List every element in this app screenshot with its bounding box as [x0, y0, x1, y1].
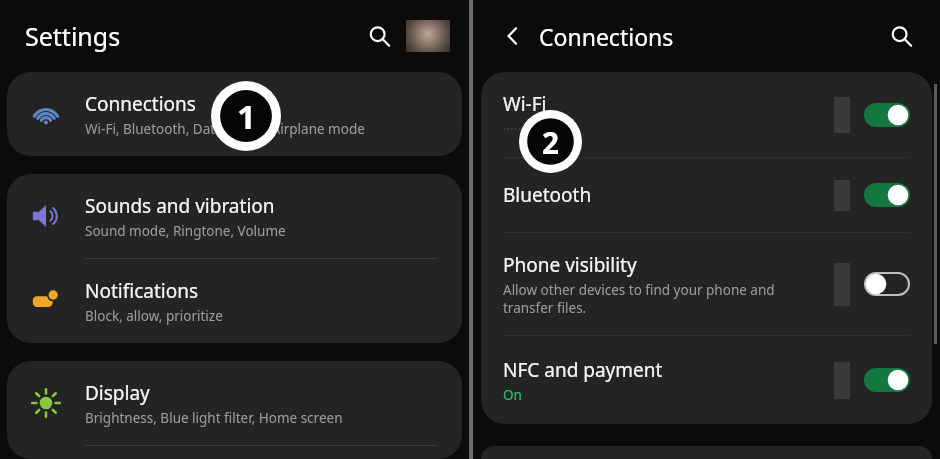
staticText: Connections — [539, 21, 674, 52]
staticText: Brightness, Blue light filter, Home scre… — [85, 409, 343, 427]
staticText: Sound mode, Ringtone, Volume — [85, 222, 286, 240]
button[interactable]: Back — [497, 20, 529, 52]
staticText: Display — [85, 380, 150, 406]
button[interactable]: Bluetooth — [864, 183, 910, 207]
staticText: Phone visibility — [503, 252, 637, 278]
button[interactable]: Display — [7, 361, 462, 445]
staticText: Wi-Fi, Bluetooth, Data usage, Airplane m… — [85, 120, 365, 138]
button[interactable]: Bluetooth — [481, 158, 932, 232]
button[interactable]: Wi-Fi — [481, 72, 932, 157]
button[interactable]: Connections — [7, 72, 462, 156]
button[interactable]: Sounds and vibration — [7, 174, 462, 258]
staticText: Sounds and vibration — [85, 193, 275, 219]
button[interactable]: NFC and payment — [864, 368, 910, 392]
staticText: Bluetooth — [503, 182, 592, 208]
staticText: ······· — [503, 120, 529, 138]
staticText: NFC and payment — [503, 357, 663, 383]
staticText: Notifications — [85, 278, 199, 304]
staticText: 2 — [542, 122, 559, 162]
staticText: Block, allow, prioritize — [85, 307, 223, 325]
button[interactable]: Search — [362, 19, 396, 53]
button[interactable]: Wi-Fi — [864, 103, 910, 127]
staticText: Wi-Fi — [503, 91, 547, 117]
button[interactable]: Account — [406, 20, 450, 52]
staticText: On — [503, 386, 522, 404]
button[interactable]: Phone visibility — [864, 272, 910, 296]
staticText: 1 — [237, 94, 256, 139]
button[interactable]: Search — [884, 19, 918, 53]
staticText: Settings — [25, 19, 121, 53]
button[interactable]: NFC and payment — [481, 336, 932, 424]
button[interactable]: Notifications — [7, 259, 462, 343]
staticText: Allow other devices to find your phone a… — [503, 281, 775, 317]
staticText: Connections — [85, 91, 196, 117]
button[interactable]: Phone visibility — [481, 233, 932, 335]
